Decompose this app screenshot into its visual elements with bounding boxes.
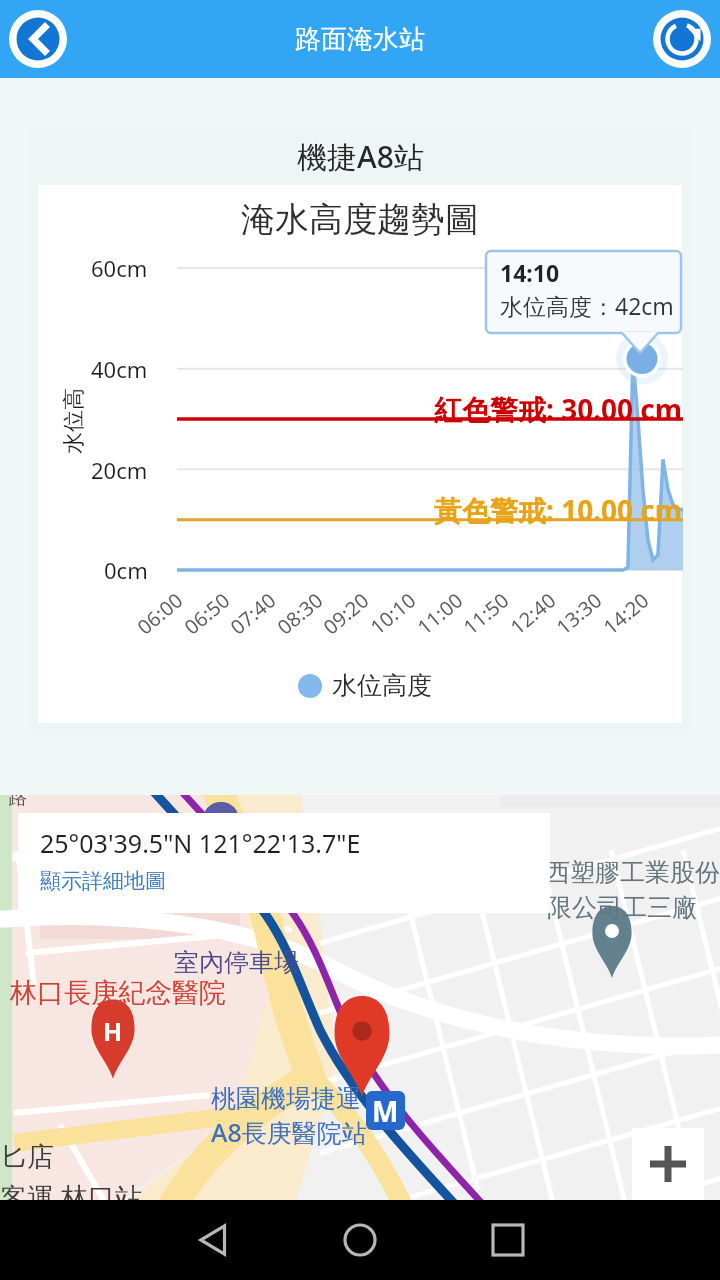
staticText: 07:40 — [224, 586, 282, 640]
staticText: 匕店 — [0, 1140, 54, 1174]
staticText: 08:30 — [271, 586, 329, 640]
staticText: M — [372, 1092, 399, 1130]
staticText: 室內停車場 — [174, 947, 299, 978]
staticText: 西塑膠工業股份 — [545, 857, 720, 888]
staticText: 淹水高度趨勢圖 — [241, 198, 479, 241]
staticText: 客運 林口站 — [0, 1178, 143, 1200]
staticText: P — [213, 814, 228, 845]
staticText: 60cm — [91, 253, 148, 283]
staticText: H — [103, 1014, 123, 1048]
staticText: 路面淹水站 — [295, 23, 425, 56]
button[interactable]: Home — [330, 1210, 390, 1270]
staticText: 11:00 — [411, 586, 469, 640]
staticText: 40cm — [91, 354, 148, 384]
staticText: 06:50 — [178, 586, 236, 640]
staticText: 14:20 — [597, 586, 655, 640]
staticText: 水位高 — [60, 388, 88, 454]
staticText: 06:00 — [131, 586, 189, 640]
staticText: 14:10 — [500, 257, 560, 288]
staticText: 10:10 — [364, 586, 422, 640]
staticText: 13:30 — [550, 586, 608, 640]
staticText: 12:40 — [504, 586, 562, 640]
staticText: 25°03'39.5"N 121°22'13.7"E — [40, 826, 361, 860]
staticText: 09:20 — [317, 586, 375, 640]
staticText: 紅色警戒: 30.00 cm — [434, 390, 683, 428]
button[interactable]: Back — [9, 10, 67, 68]
staticText: 20cm — [91, 455, 148, 485]
staticText: 水位高度：42cm — [500, 290, 674, 321]
staticText: 林口長庚紀念醫院 — [10, 976, 226, 1010]
button[interactable]: Refresh — [653, 10, 711, 68]
staticText: 11:50 — [457, 586, 515, 640]
staticText: A8長庚醫院站 — [211, 1115, 367, 1149]
button[interactable]: 25°03'39.5"N 121°22'13.7"E — [18, 813, 550, 913]
staticText: 機捷A8站 — [297, 136, 424, 177]
staticText: 限公司工三廠 — [547, 892, 697, 923]
staticText: 路 — [8, 795, 27, 810]
staticText: 0cm — [104, 555, 148, 585]
button[interactable]: Zoom in — [632, 1128, 704, 1200]
staticText: 桃園機場捷運 — [211, 1083, 361, 1114]
staticText: 黃色警戒: 10.00 cm — [434, 491, 683, 529]
staticText: 顯示詳細地圖 — [40, 868, 166, 894]
button[interactable]: Recents — [478, 1210, 538, 1270]
button[interactable]: Back — [183, 1210, 243, 1270]
staticText: 水位高度 — [332, 670, 432, 701]
